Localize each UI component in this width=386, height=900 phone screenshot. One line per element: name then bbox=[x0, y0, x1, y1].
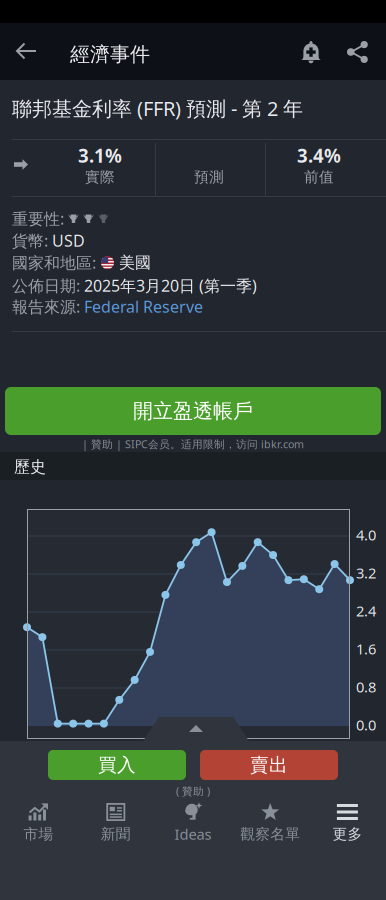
staticText: 更多 bbox=[332, 825, 362, 843]
staticText: 賣出 bbox=[250, 753, 288, 776]
button[interactable]: Back bbox=[14, 40, 38, 62]
staticText: Ideas bbox=[174, 824, 211, 844]
staticText: 0.8 bbox=[356, 677, 376, 696]
staticText: 預測 bbox=[194, 168, 224, 186]
staticText: 3.4% bbox=[297, 143, 341, 168]
staticText: 0.0 bbox=[356, 715, 376, 734]
staticText: Federal Reserve bbox=[84, 296, 203, 317]
button[interactable]: Expand bbox=[143, 717, 249, 741]
button[interactable]: 新聞 bbox=[77, 803, 154, 843]
staticText: 開立盈透帳戶 bbox=[133, 399, 253, 423]
staticText: 重要性: bbox=[12, 208, 64, 229]
staticText: ( 贊助 ) bbox=[176, 784, 210, 798]
button[interactable]: 更多 bbox=[309, 803, 386, 843]
button[interactable]: 觀察名單 bbox=[232, 803, 309, 843]
staticText: 買入 bbox=[98, 753, 136, 776]
button[interactable]: 市場 bbox=[0, 803, 77, 843]
staticText: 2025年3月20日 (第一季) bbox=[84, 275, 257, 296]
staticText: 國家和地區: bbox=[12, 252, 96, 273]
staticText: 美國 bbox=[119, 253, 151, 272]
staticText: 市場 bbox=[24, 825, 54, 843]
staticText: 前值 bbox=[304, 168, 334, 186]
button[interactable]: 賣出 bbox=[200, 750, 338, 780]
staticText: USD bbox=[52, 230, 85, 251]
staticText: 4.0 bbox=[356, 525, 376, 544]
staticText: 2.4 bbox=[356, 601, 376, 620]
staticText: 貨幣: bbox=[12, 230, 48, 251]
button[interactable]: Share bbox=[347, 41, 368, 63]
staticText: 觀察名單 bbox=[240, 825, 300, 843]
staticText: 3.1% bbox=[78, 143, 122, 168]
button[interactable]: Ideas bbox=[154, 803, 232, 843]
staticText: 聯邦基金利率 (FFR) 預測 - 第 2 年 bbox=[12, 95, 303, 122]
button[interactable]: 買入 bbox=[48, 750, 186, 780]
staticText: 1.6 bbox=[356, 639, 376, 658]
staticText: 歷史 bbox=[14, 457, 46, 477]
staticText: 公佈日期: bbox=[12, 275, 80, 296]
staticText: 經濟事件 bbox=[70, 42, 150, 67]
staticText: | 贊助 | SIPC会员。适用限制，访问 ibkr.com bbox=[82, 437, 304, 451]
staticText: 報告來源: bbox=[12, 296, 80, 317]
button[interactable]: 開立盈透帳戶 bbox=[5, 387, 381, 435]
button[interactable]: Add alert bbox=[300, 40, 322, 64]
staticText: 新聞 bbox=[101, 825, 131, 843]
staticText: 實際 bbox=[85, 168, 115, 186]
button[interactable]: Federal Reserve bbox=[84, 296, 203, 317]
staticText: 3.2 bbox=[356, 563, 376, 582]
